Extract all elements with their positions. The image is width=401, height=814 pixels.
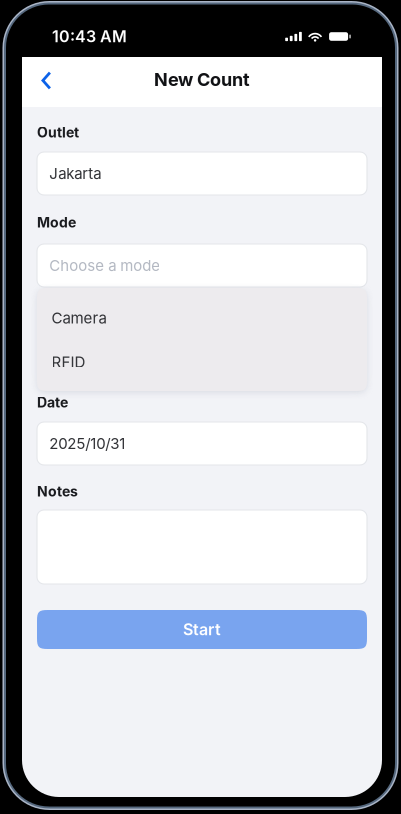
button[interactable]: Start	[37, 610, 367, 649]
staticText: 10:43 AM	[52, 27, 127, 46]
staticText: New Count	[154, 69, 250, 90]
staticText: Notes	[37, 483, 78, 500]
staticText: Start	[183, 620, 221, 639]
button[interactable]: RFID	[37, 340, 367, 384]
staticText: Outlet	[37, 124, 79, 141]
button[interactable]: Back	[22, 57, 65, 107]
staticText: Camera	[51, 309, 106, 327]
staticText: 2025/10/31	[49, 434, 125, 453]
staticText: Jakarta	[49, 164, 101, 183]
staticText: Choose a mode	[49, 256, 160, 275]
button[interactable]: Camera	[37, 296, 367, 340]
staticText: Mode	[37, 214, 76, 231]
staticText: RFID	[51, 353, 85, 371]
staticText: Date	[37, 394, 68, 411]
